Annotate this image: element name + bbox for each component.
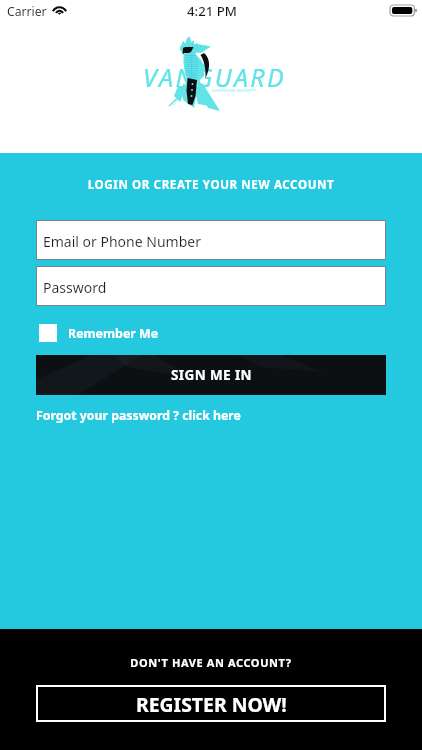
button[interactable]: SIGN ME IN xyxy=(36,355,386,395)
staticText: Carrier xyxy=(7,3,47,20)
staticText: ADVENTURE SECURITY xyxy=(212,88,257,93)
staticText: VANGUARD xyxy=(143,60,287,94)
staticText: Password xyxy=(43,278,107,297)
button[interactable]: Password xyxy=(36,266,386,306)
staticText: LOGIN OR CREATE YOUR NEW ACCOUNT xyxy=(0,177,422,193)
staticText: SIGN ME IN xyxy=(171,366,252,384)
button[interactable]: Email or Phone Number xyxy=(36,220,386,260)
button[interactable]: REGISTER NOW! xyxy=(36,685,386,722)
staticText: 4:21 PM xyxy=(187,2,237,20)
button[interactable]: Forgot your password ? click here xyxy=(36,407,241,424)
staticText: Remember Me xyxy=(68,325,159,342)
other: Vanguard Adventure Security logo xyxy=(131,30,306,120)
button[interactable]: Remember Me xyxy=(39,324,159,342)
staticText: Email or Phone Number xyxy=(43,232,201,251)
staticText: DON'T HAVE AN ACCOUNT? xyxy=(0,655,422,670)
staticText: REGISTER NOW! xyxy=(136,691,287,717)
